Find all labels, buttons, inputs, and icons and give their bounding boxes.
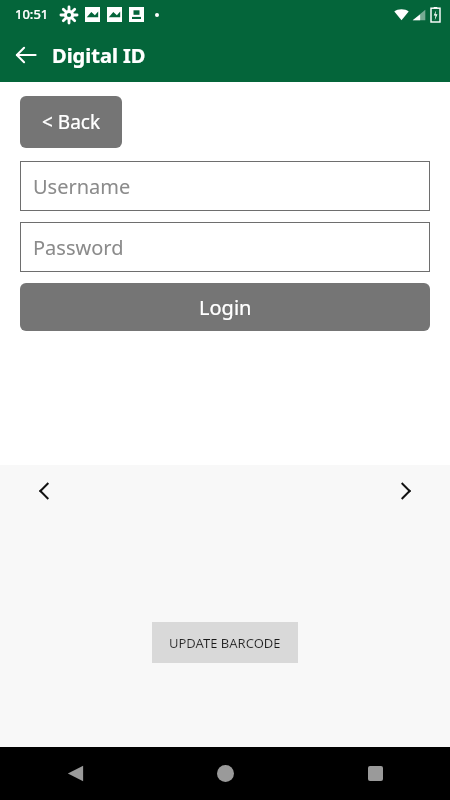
staticText: UPDATE BARCODE xyxy=(169,634,281,652)
button[interactable]: Back xyxy=(0,747,150,800)
button[interactable]: Login xyxy=(20,283,430,331)
staticText: 10:51 xyxy=(15,5,49,23)
button[interactable]: Recent apps xyxy=(300,747,450,800)
staticText: Password xyxy=(33,234,124,261)
button[interactable]: < Back xyxy=(20,96,122,148)
button[interactable]: Navigate up xyxy=(0,29,52,81)
button[interactable]: Home xyxy=(150,747,300,800)
staticText: Username xyxy=(33,173,131,200)
button[interactable]: Password xyxy=(20,222,430,272)
button[interactable]: Previous xyxy=(22,469,66,513)
button[interactable]: Next xyxy=(384,469,428,513)
staticText: < Back xyxy=(42,109,101,135)
button[interactable]: Username xyxy=(20,161,430,211)
button[interactable]: UPDATE BARCODE xyxy=(152,622,298,663)
staticText: Digital ID xyxy=(52,42,146,69)
staticText: Login xyxy=(199,294,252,321)
